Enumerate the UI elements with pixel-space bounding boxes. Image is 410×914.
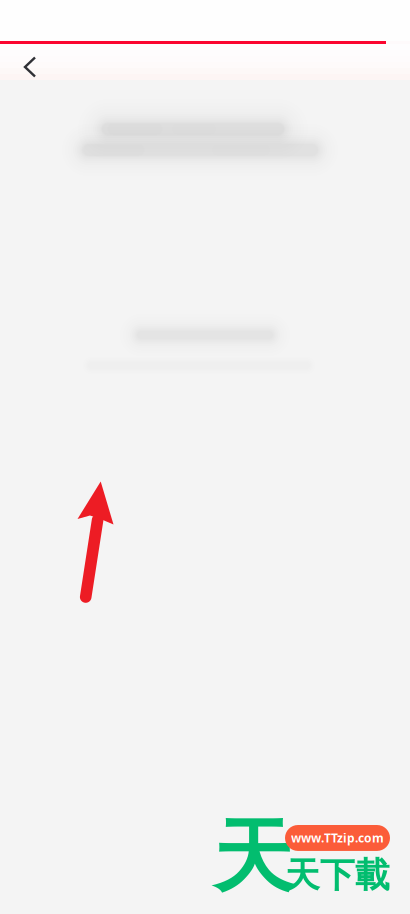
button[interactable]: Back — [7, 49, 53, 85]
staticText: www.TTzip.com — [291, 830, 384, 846]
staticText: 天 — [213, 808, 293, 906]
staticText: 天下載 — [285, 854, 390, 897]
